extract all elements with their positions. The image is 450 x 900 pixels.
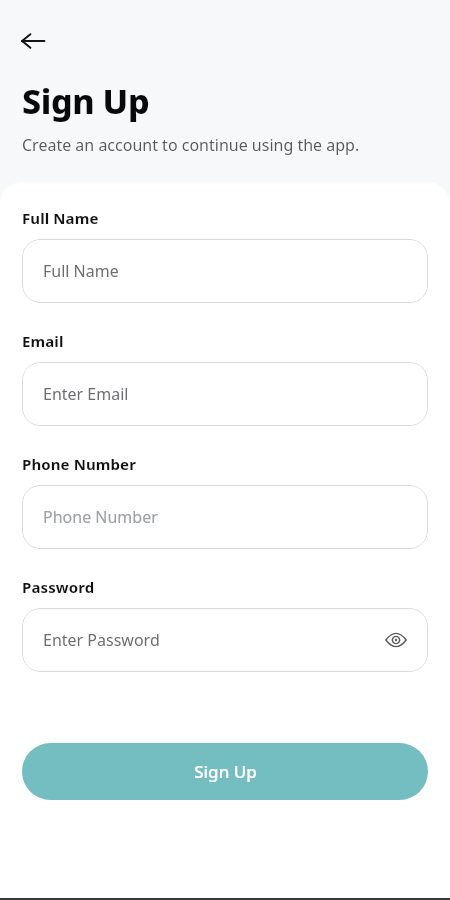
button[interactable]: Sign Up — [22, 743, 428, 800]
button[interactable]: Back — [18, 26, 48, 56]
staticText: Enter Email — [43, 383, 129, 405]
staticText: Enter Password — [43, 629, 160, 651]
staticText: Phone Number — [43, 506, 158, 528]
button[interactable]: Enter Password — [22, 608, 428, 672]
staticText: Create an account to continue using the … — [22, 134, 360, 156]
staticText: Phone Number — [22, 454, 136, 474]
button[interactable]: Phone Number — [22, 485, 428, 549]
staticText: Email — [22, 331, 64, 351]
staticText: Sign Up — [22, 78, 150, 124]
staticText: Full Name — [43, 260, 119, 282]
staticText: Full Name — [22, 208, 99, 228]
button[interactable]: Enter Email — [22, 362, 428, 426]
button[interactable]: Full Name — [22, 239, 428, 303]
staticText: Password — [22, 577, 95, 597]
button[interactable]: Show password — [382, 626, 410, 654]
staticText: Sign Up — [194, 760, 257, 783]
